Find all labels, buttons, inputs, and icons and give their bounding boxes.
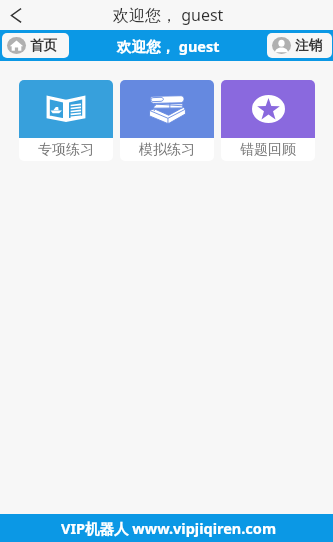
staticText: 错题回顾 (240, 141, 296, 159)
button[interactable]: Back (0, 0, 32, 30)
button[interactable]: 首页 (2, 33, 69, 58)
button[interactable]: 模拟练习 (120, 80, 214, 161)
staticText: 欢迎您， guest (117, 36, 220, 56)
button[interactable]: 专项练习 (19, 80, 113, 161)
button[interactable]: 注销 (267, 33, 332, 58)
staticText: 欢迎您， guest (113, 4, 224, 26)
staticText: 专项练习 (38, 141, 94, 159)
staticText: 模拟练习 (139, 141, 195, 159)
staticText: 注销 (295, 37, 322, 54)
button[interactable]: 错题回顾 (221, 80, 315, 161)
staticText: VIP机器人 www.vipjiqiren.com (61, 518, 277, 538)
staticText: 首页 (30, 37, 57, 54)
